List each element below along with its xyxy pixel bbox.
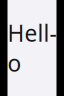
staticText: Hello [7, 18, 56, 78]
